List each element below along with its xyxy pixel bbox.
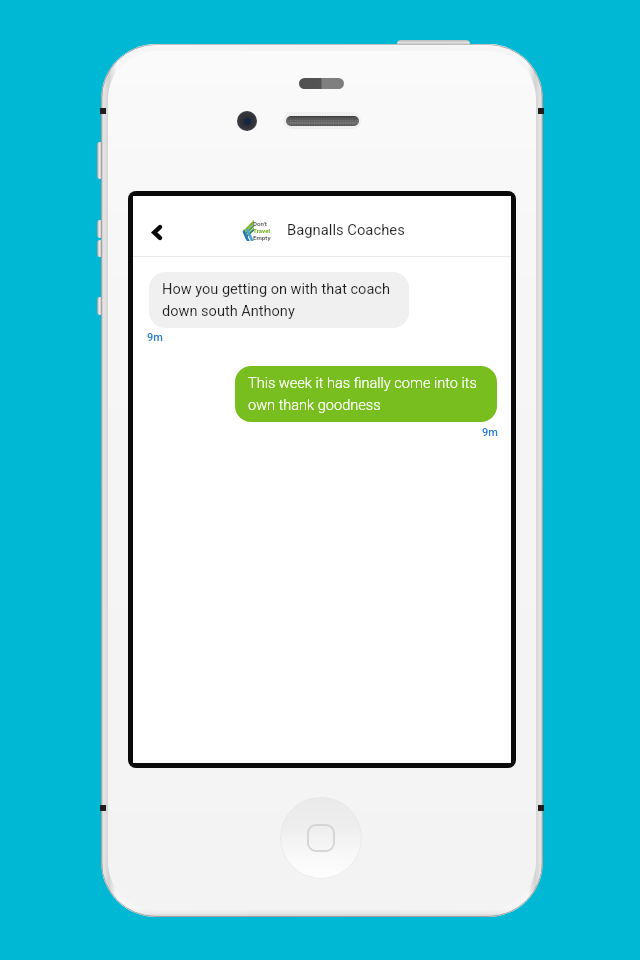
staticText: Travel (253, 227, 271, 234)
staticText: 9m (147, 331, 163, 344)
button[interactable]: Home (280, 797, 362, 879)
staticText: Don't (253, 220, 267, 227)
staticText: Empty (253, 234, 271, 241)
button[interactable]: Back (133, 209, 181, 255)
button[interactable]: How you getting on with that coach down … (149, 272, 409, 328)
staticText: Bagnalls Coaches (287, 221, 405, 238)
staticText: This week it has finally come into its o… (248, 375, 489, 413)
staticText: How you getting on with that coach down … (162, 281, 401, 319)
staticText: 9m (482, 426, 498, 439)
button[interactable]: This week it has finally come into its o… (235, 366, 497, 422)
